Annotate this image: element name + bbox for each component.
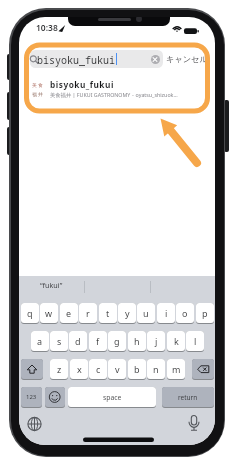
button[interactable] [192, 359, 214, 380]
staticText: e [66, 307, 72, 319]
button[interactable] [151, 55, 160, 64]
button[interactable]: o [176, 303, 194, 324]
button[interactable]: p [196, 303, 214, 324]
staticText: o [182, 307, 188, 319]
button[interactable]: c [89, 359, 107, 380]
staticText: m [172, 363, 181, 375]
button[interactable]: b [128, 359, 146, 380]
staticText: 福 井 [32, 91, 43, 98]
button[interactable]: n [147, 359, 165, 380]
staticText: “fukui” [40, 280, 63, 290]
button[interactable] [30, 50, 163, 68]
button[interactable]: k [167, 331, 185, 352]
staticText: 美食福井 | FUKUI GASTRONOMY・oyatsu_shizuok… [50, 91, 209, 98]
staticText: u [143, 307, 149, 319]
staticText: p [202, 307, 208, 319]
staticText: r [86, 307, 90, 319]
button[interactable]: return [162, 387, 214, 408]
button[interactable]: i [157, 303, 175, 324]
button[interactable]: t [99, 303, 117, 324]
staticText: f [96, 335, 100, 347]
button[interactable]: l [186, 331, 204, 352]
staticText: k [174, 335, 179, 347]
button[interactable]: j [147, 331, 165, 352]
button[interactable]: v [108, 359, 126, 380]
staticText: c [96, 363, 101, 375]
staticText: space [103, 393, 122, 402]
staticText: y [125, 307, 130, 319]
staticText: 美 食 [32, 82, 43, 89]
button[interactable]: f [89, 331, 107, 352]
button[interactable] [167, 52, 211, 66]
button[interactable] [45, 387, 65, 408]
button[interactable]: g [108, 331, 126, 352]
staticText: 10:38 [36, 22, 58, 34]
staticText: bisyoku_fukui [50, 79, 114, 90]
button[interactable]: z [50, 359, 68, 380]
staticText: v [115, 363, 120, 375]
staticText: q [27, 307, 33, 319]
button[interactable]: d [69, 331, 87, 352]
button[interactable]: y [118, 303, 136, 324]
button[interactable]: space [68, 387, 156, 408]
button[interactable]: “fukui” [19, 277, 84, 293]
staticText: j [155, 335, 158, 347]
staticText: t [106, 307, 110, 319]
staticText: s [57, 335, 62, 347]
staticText: キャンセル [166, 54, 208, 64]
staticText: n [153, 363, 159, 375]
staticText: i [165, 307, 168, 319]
button[interactable]: r [79, 303, 97, 324]
staticText: return [178, 393, 198, 402]
button[interactable]: 123 [21, 387, 42, 408]
button[interactable] [21, 359, 43, 380]
staticText: 123 [26, 393, 37, 401]
button[interactable]: m [167, 359, 185, 380]
staticText: w [45, 307, 53, 319]
button[interactable]: q [21, 303, 39, 324]
staticText: x [77, 363, 82, 375]
staticText: d [75, 335, 81, 347]
button[interactable]: u [137, 303, 155, 324]
button[interactable]: w [40, 303, 58, 324]
staticText: bisyoku_fukui [37, 53, 115, 67]
staticText: z [57, 363, 62, 375]
staticText: h [134, 335, 140, 347]
staticText: g [114, 335, 120, 347]
button[interactable]: e [60, 303, 78, 324]
staticText: l [194, 335, 197, 347]
button[interactable]: a [31, 331, 49, 352]
button[interactable]: s [50, 331, 68, 352]
button[interactable]: h [128, 331, 146, 352]
staticText: a [37, 335, 43, 347]
button[interactable] [27, 77, 209, 100]
staticText: b [134, 363, 140, 375]
button[interactable]: x [70, 359, 88, 380]
